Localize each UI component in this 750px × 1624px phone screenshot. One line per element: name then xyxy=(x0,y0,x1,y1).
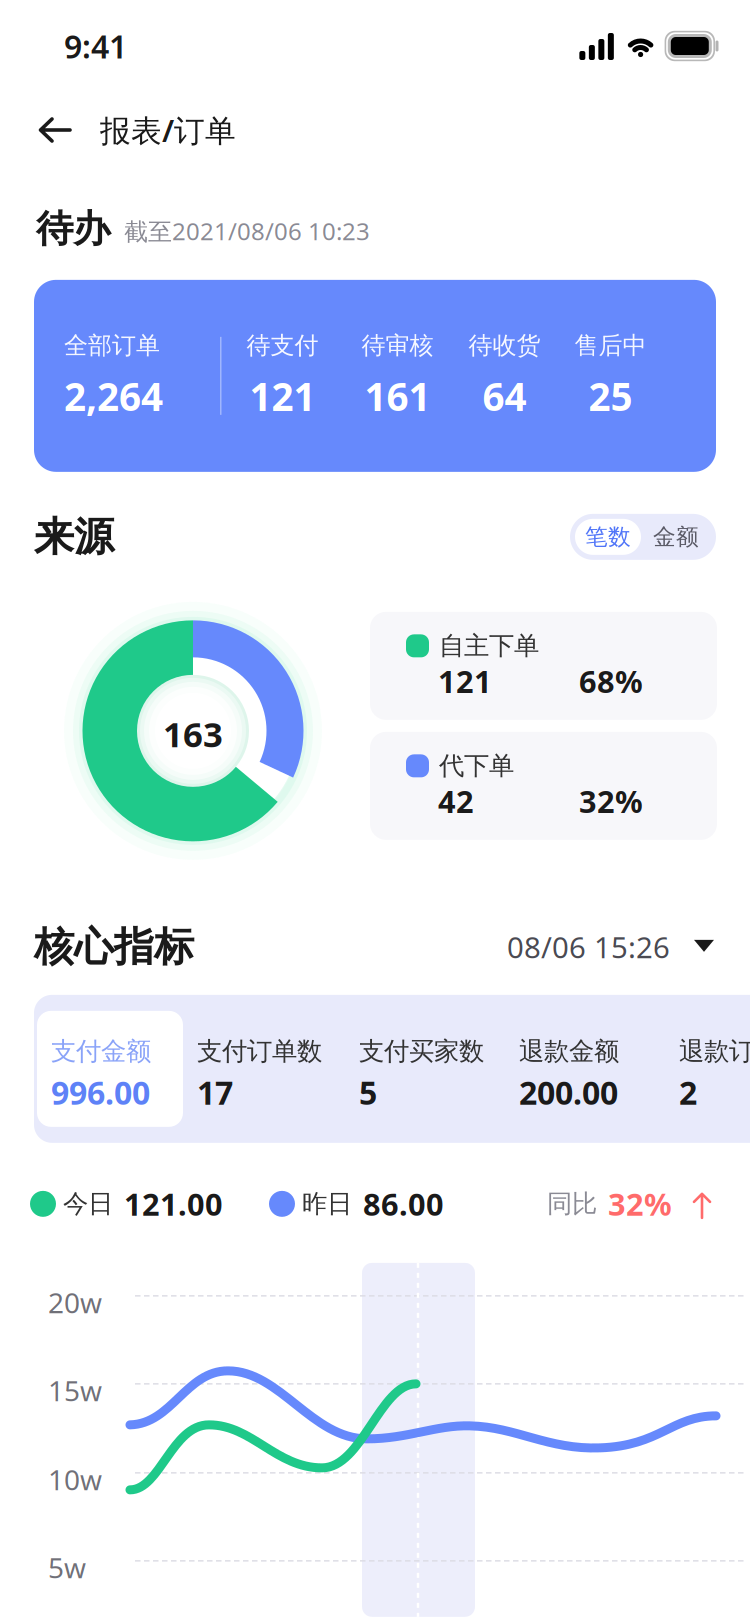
staticText: 今日 xyxy=(63,1188,113,1219)
staticText: 64 xyxy=(482,370,526,422)
staticText: 121.00 xyxy=(124,1183,223,1224)
staticText: 待支付 xyxy=(246,331,318,360)
button[interactable]: Back xyxy=(0,107,100,153)
staticText: 2 xyxy=(679,1071,697,1113)
staticText: 5 xyxy=(359,1071,377,1113)
staticText: 代下单 xyxy=(439,750,514,781)
button[interactable]: 退款订单数 xyxy=(665,1011,750,1127)
staticText: 42 xyxy=(438,781,474,822)
button[interactable]: 待支付 xyxy=(221,280,343,472)
button[interactable]: 退款金额 xyxy=(505,1011,665,1127)
staticText: 32% xyxy=(608,1183,672,1224)
button[interactable]: 代下单 xyxy=(370,732,717,840)
staticText: 金额 xyxy=(653,523,699,551)
staticText: 待审核 xyxy=(361,331,433,360)
staticText: 退款金额 xyxy=(519,1036,619,1067)
staticText: 待收货 xyxy=(468,331,540,360)
button[interactable]: 售后中 xyxy=(557,280,663,472)
staticText: 笔数 xyxy=(585,523,631,551)
staticText: 17 xyxy=(197,1071,233,1113)
button[interactable]: 笔数 xyxy=(575,519,641,555)
staticText: 售后中 xyxy=(574,331,646,360)
button[interactable]: 支付金额 xyxy=(37,1011,183,1127)
staticText: 121 xyxy=(249,370,315,422)
button[interactable]: 待收货 xyxy=(451,280,557,472)
staticText: 32% xyxy=(579,781,643,822)
staticText: 5w xyxy=(48,1549,86,1586)
staticText: 121 xyxy=(438,661,492,702)
staticText: 2,264 xyxy=(64,370,163,422)
staticText: 全部订单 xyxy=(64,331,160,360)
staticText: 200.00 xyxy=(519,1071,618,1113)
button[interactable]: 支付订单数 xyxy=(183,1011,345,1127)
staticText: 来源 xyxy=(34,512,114,561)
staticText: 报表/订单 xyxy=(100,110,236,150)
staticText: 161 xyxy=(364,370,430,422)
staticText: 支付买家数 xyxy=(359,1036,484,1067)
button[interactable]: 全部订单 xyxy=(34,280,220,472)
staticText: 退款订单数 xyxy=(679,1036,750,1067)
staticText: 待办 xyxy=(36,206,110,252)
button[interactable]: 自主下单 xyxy=(370,612,717,720)
button[interactable]: 金额 xyxy=(641,519,711,555)
staticText: 截至2021/08/06 10:23 xyxy=(124,215,370,247)
staticText: 9:41 xyxy=(64,25,127,67)
button[interactable]: 待审核 xyxy=(343,280,451,472)
button[interactable]: 支付买家数 xyxy=(345,1011,505,1127)
staticText: 支付订单数 xyxy=(197,1036,322,1067)
staticText: 核心指标 xyxy=(34,922,194,971)
staticText: 支付金额 xyxy=(51,1036,151,1067)
staticText: 86.00 xyxy=(363,1183,444,1224)
staticText: 08/06 15:26 xyxy=(507,927,670,966)
staticText: 163 xyxy=(163,711,223,757)
staticText: 15w xyxy=(48,1372,102,1409)
button[interactable]: 08/06 15:26 xyxy=(507,927,716,966)
staticText: 同比 xyxy=(547,1188,597,1219)
staticText: 20w xyxy=(48,1284,102,1321)
staticText: 自主下单 xyxy=(439,630,539,661)
staticText: 昨日 xyxy=(302,1188,352,1219)
staticText: 25 xyxy=(588,370,632,422)
staticText: 68% xyxy=(579,661,643,702)
staticText: 996.00 xyxy=(51,1071,150,1113)
staticText: 10w xyxy=(48,1461,102,1498)
